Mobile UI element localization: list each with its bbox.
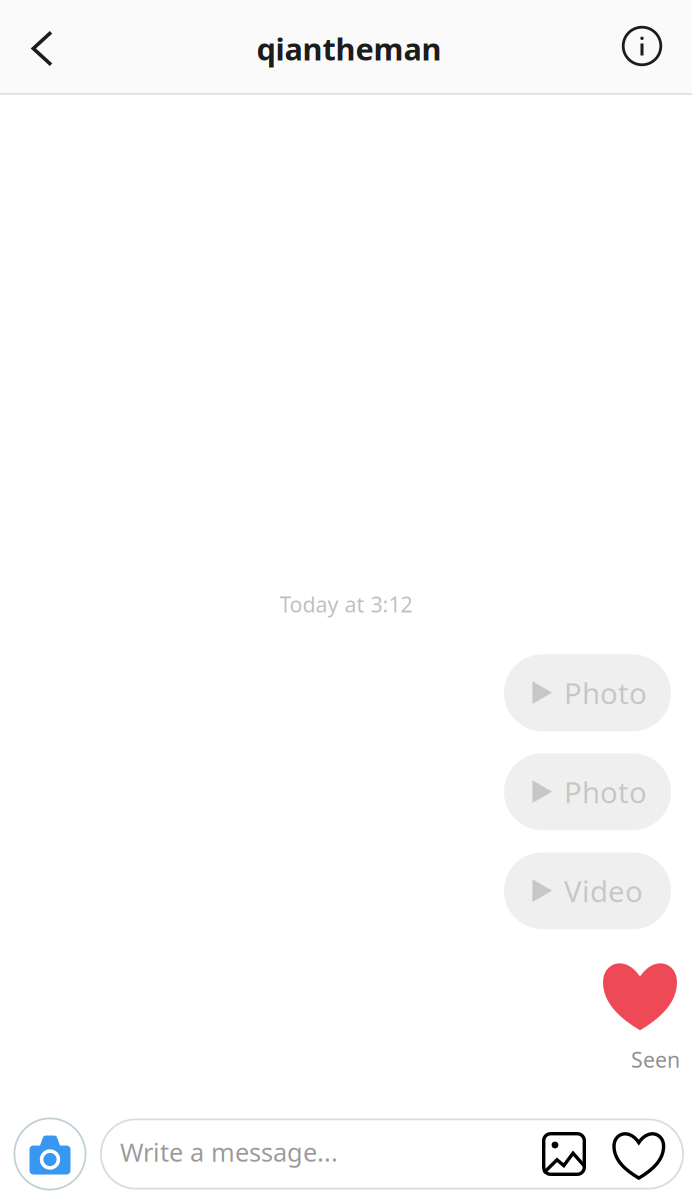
staticText: Photo [564,772,647,811]
button[interactable]: Photos [523,1118,605,1189]
staticText: Photo [564,673,647,712]
staticText: Seen [631,1045,680,1074]
staticText: qiantheman [256,28,441,69]
button[interactable]: Photo [504,654,671,731]
button[interactable]: Write a message... [100,1118,338,1189]
staticText: Today at 3:12 [279,590,412,618]
button[interactable]: Back [0,0,84,93]
button[interactable]: Video [504,852,671,929]
staticText: Video [564,871,643,910]
button[interactable]: Conversation details [592,0,692,93]
button[interactable]: Camera [13,1117,87,1191]
staticText: Write a message... [120,1135,338,1169]
button[interactable]: Like [605,1118,676,1189]
button[interactable]: Photo [504,753,671,830]
